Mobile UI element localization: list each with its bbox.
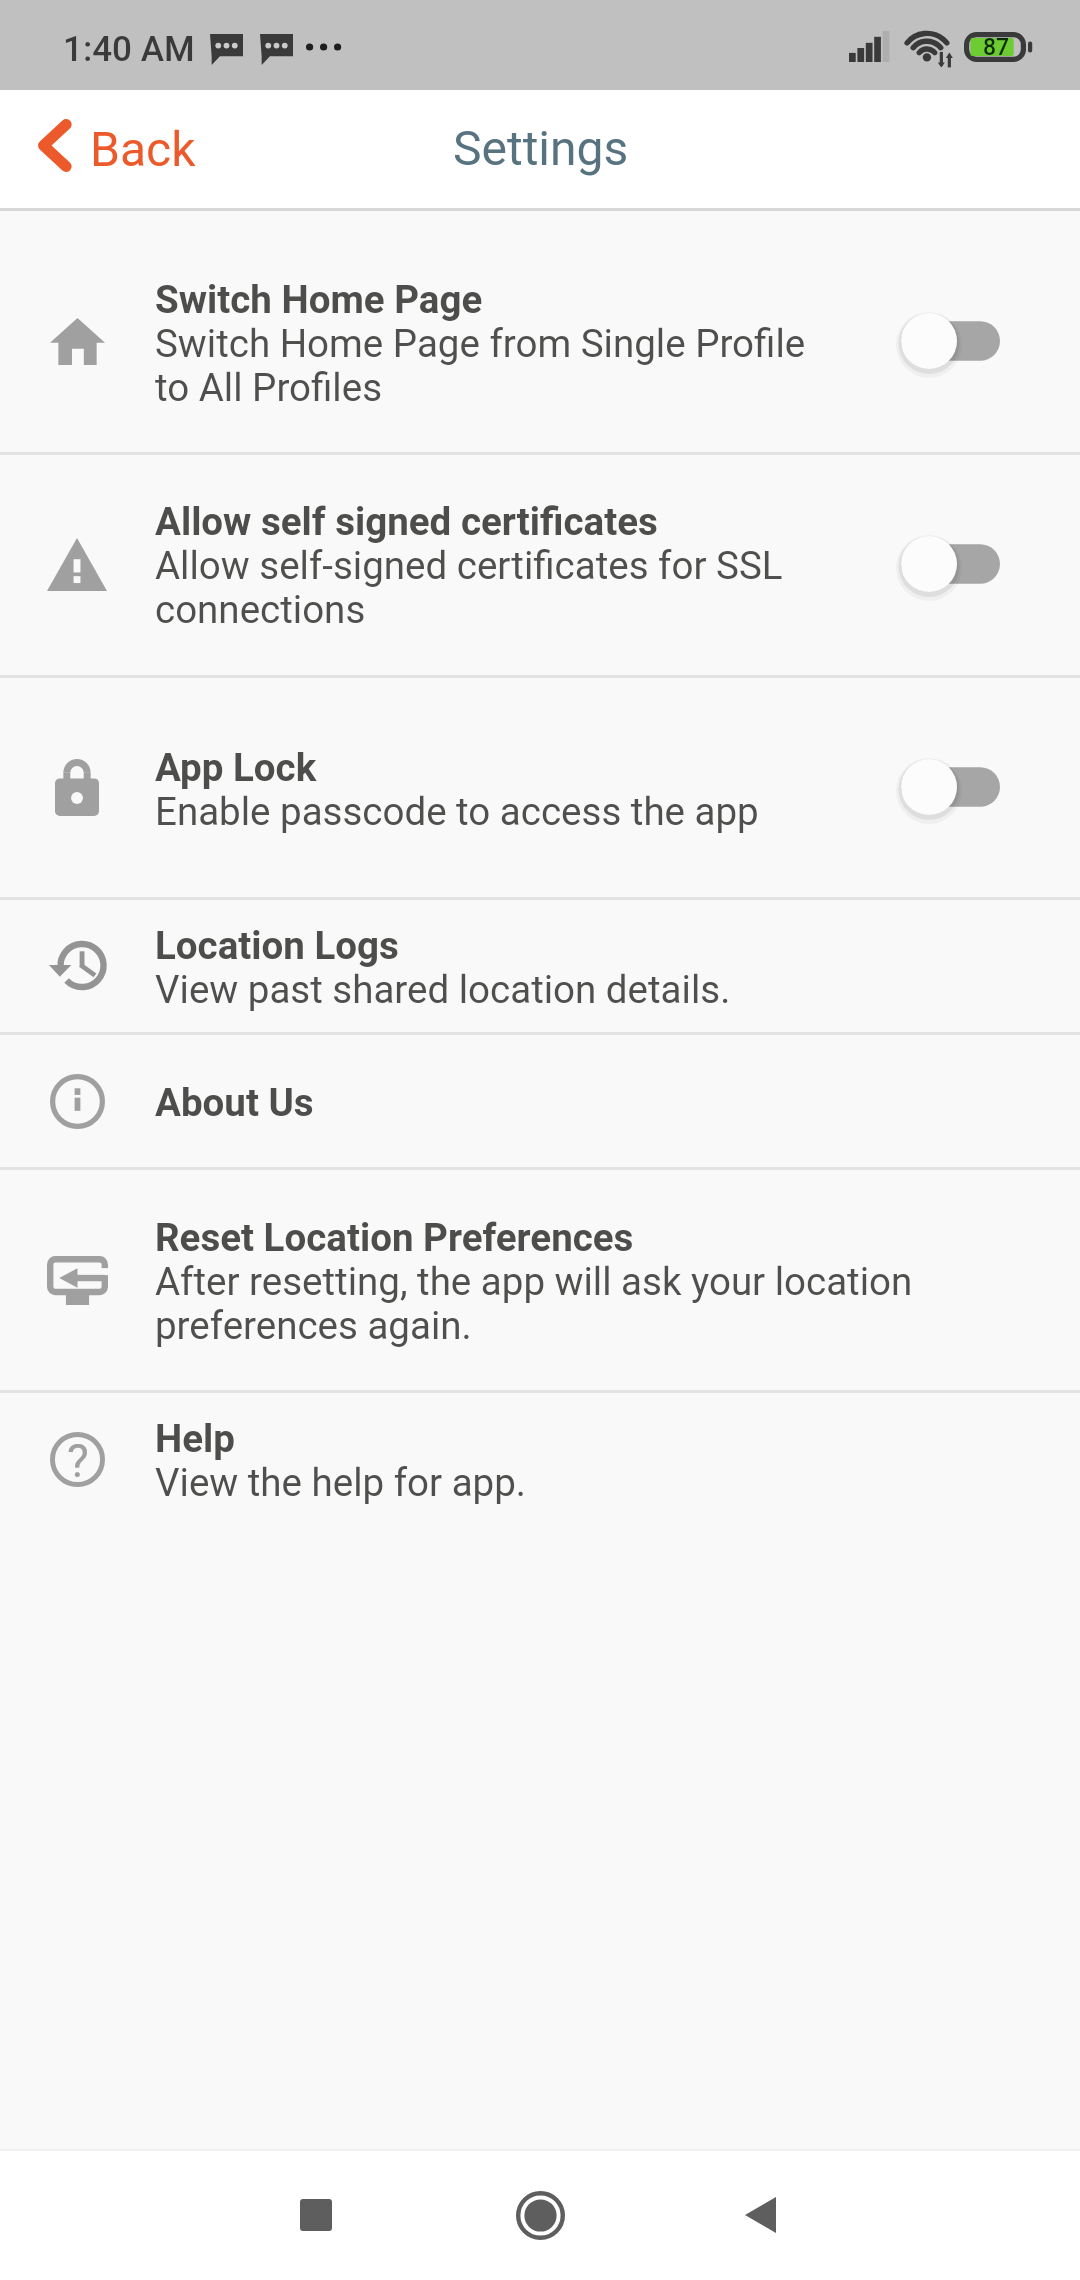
- staticText: App Lock: [155, 746, 317, 790]
- staticText: ?: [67, 1434, 89, 1488]
- staticText: 87: [983, 34, 1010, 61]
- staticText: View past shared location details.: [155, 968, 731, 1012]
- button[interactable]: About Us: [0, 1035, 1080, 1167]
- button[interactable]: Switch Home Page: [0, 212, 1080, 453]
- button[interactable]: Toggle Switch Home Page: [880, 291, 1030, 391]
- button[interactable]: Toggle Allow self signed certificates: [880, 514, 1030, 614]
- button[interactable]: Home: [480, 2155, 600, 2275]
- button[interactable]: Allow self signed certificates: [0, 455, 1080, 675]
- staticText: 1:40 AM: [63, 29, 195, 70]
- staticText: Allow self signed certificates: [155, 500, 658, 544]
- button[interactable]: Recent apps: [256, 2155, 376, 2275]
- staticText: Reset Location Preferences: [155, 1216, 634, 1260]
- button[interactable]: Back: [700, 2155, 820, 2275]
- button[interactable]: App Lock: [0, 678, 1080, 897]
- staticText: Location Logs: [155, 924, 399, 968]
- staticText: Allow self-signed certificates for SSL c…: [155, 544, 783, 632]
- staticText: View the help for app.: [155, 1461, 526, 1505]
- staticText: Help: [155, 1417, 235, 1461]
- staticText: Enable passcode to access the app: [155, 790, 759, 834]
- staticText: Settings: [453, 120, 629, 176]
- button[interactable]: Location Logs: [0, 900, 1080, 1032]
- button[interactable]: Back: [14, 90, 230, 209]
- staticText: After resetting, the app will ask your l…: [155, 1260, 913, 1348]
- staticText: Switch Home Page from Single Profile to …: [155, 322, 806, 410]
- button[interactable]: Reset Location Preferences: [0, 1170, 1080, 1390]
- staticText: Back: [90, 121, 196, 177]
- staticText: About Us: [155, 1081, 314, 1125]
- button[interactable]: ?: [0, 1393, 1080, 1525]
- button[interactable]: Toggle App Lock: [880, 737, 1030, 837]
- staticText: Switch Home Page: [155, 278, 483, 322]
